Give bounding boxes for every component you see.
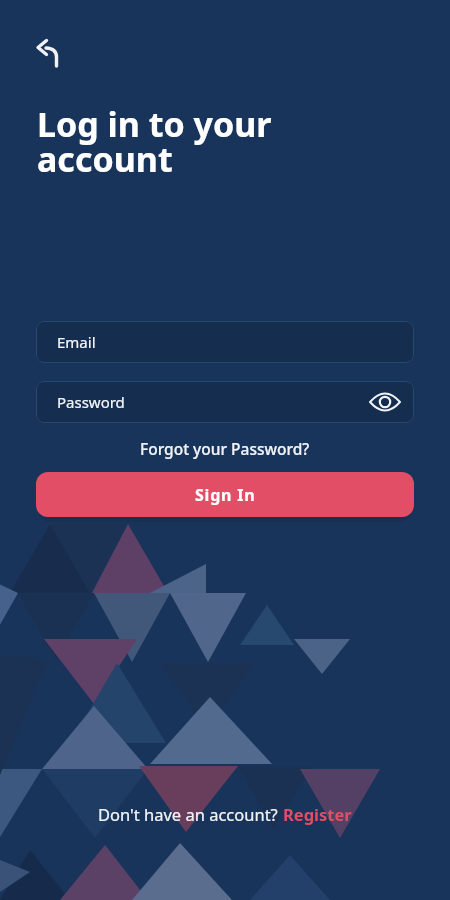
staticText: Register (283, 803, 352, 825)
button[interactable]: Forgot your Password? (140, 438, 310, 459)
staticText: Password (57, 392, 125, 412)
staticText: Log in to your account (37, 101, 272, 182)
staticText: Sign In (195, 484, 256, 506)
staticText: Don't have an account? (98, 803, 283, 825)
staticText: Forgot your Password? (140, 438, 310, 459)
button[interactable]: Register (283, 803, 352, 825)
button[interactable]: Sign In (36, 472, 414, 517)
staticText: Email (57, 332, 96, 352)
button[interactable]: Email (36, 321, 414, 363)
button[interactable]: Password (36, 381, 414, 423)
button[interactable] (30, 30, 66, 66)
